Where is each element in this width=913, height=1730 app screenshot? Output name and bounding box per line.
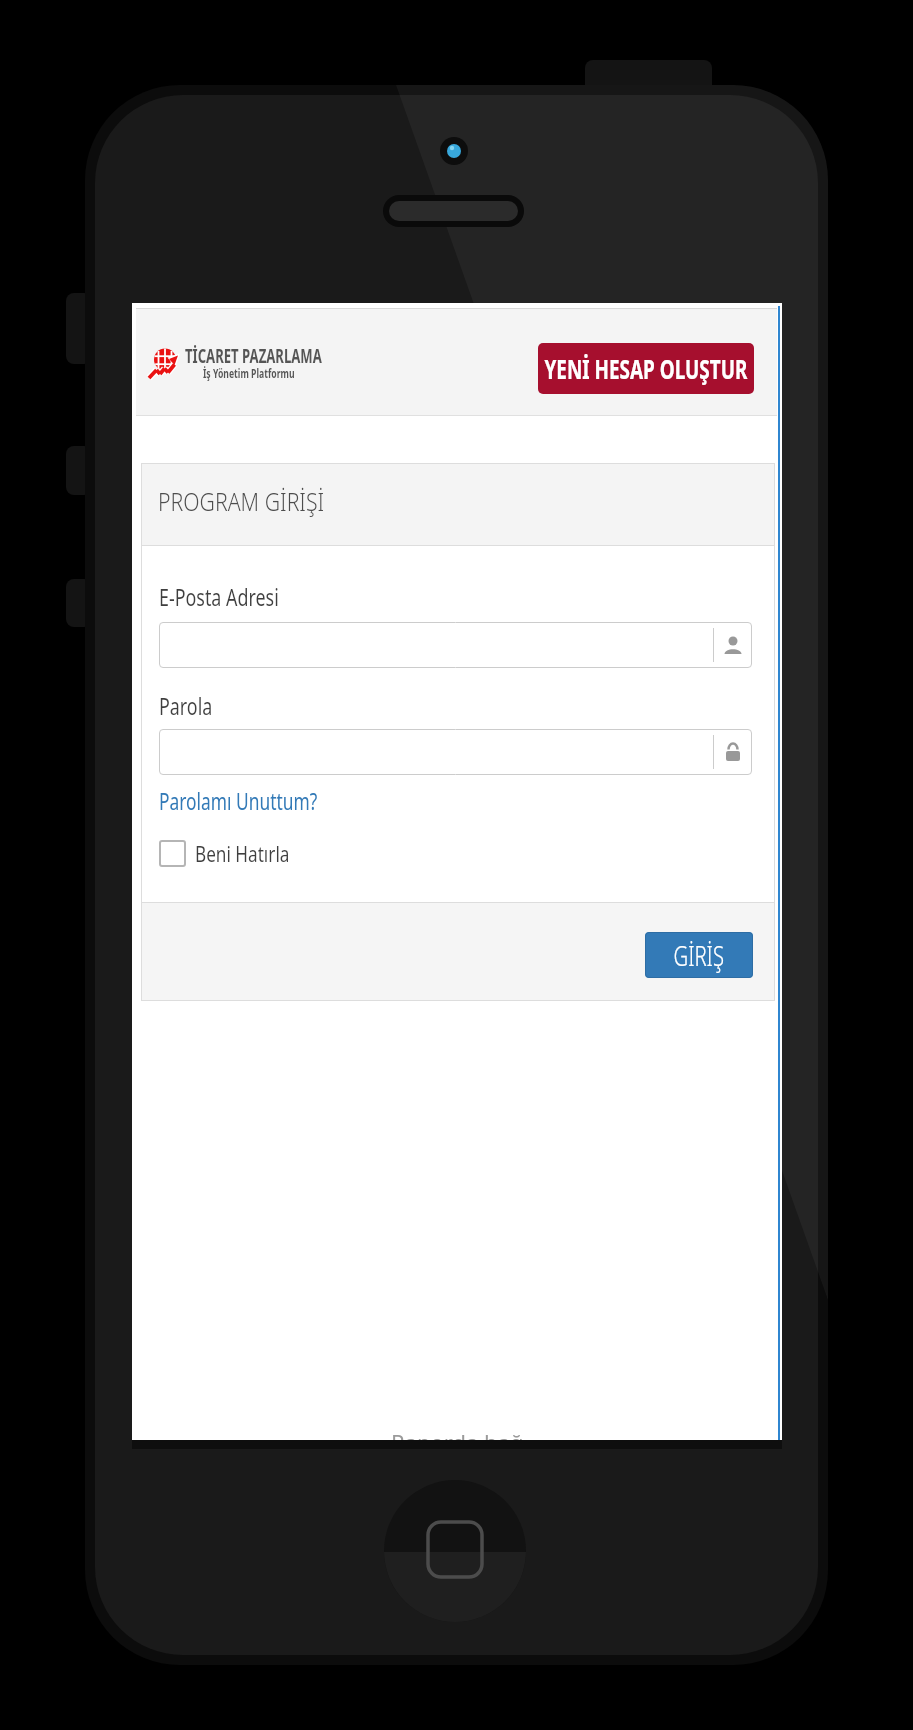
button[interactable]: GİRİŞ [645,932,753,978]
staticText: İş Yönetim Platformu [203,365,295,381]
button[interactable]: YENİ HESAP OLUŞTUR [538,343,754,394]
button[interactable] [159,729,752,775]
staticText: E-Posta Adresi [159,580,279,613]
staticText: Beni Hatırla [195,838,290,868]
staticText: GİRİŞ [673,937,724,974]
staticText: Raporda bağ [391,1427,524,1440]
button[interactable] [159,622,752,668]
staticText: YENİ HESAP OLUŞTUR [544,350,747,387]
staticText: TİCARET PAZARLAMA [185,343,322,369]
button[interactable]: Parolamı Unuttum? [159,785,369,816]
staticText: Parola [159,689,213,722]
staticText: PROGRAM GİRİŞİ [158,484,325,518]
button[interactable]: Beni Hatırla [159,838,317,868]
